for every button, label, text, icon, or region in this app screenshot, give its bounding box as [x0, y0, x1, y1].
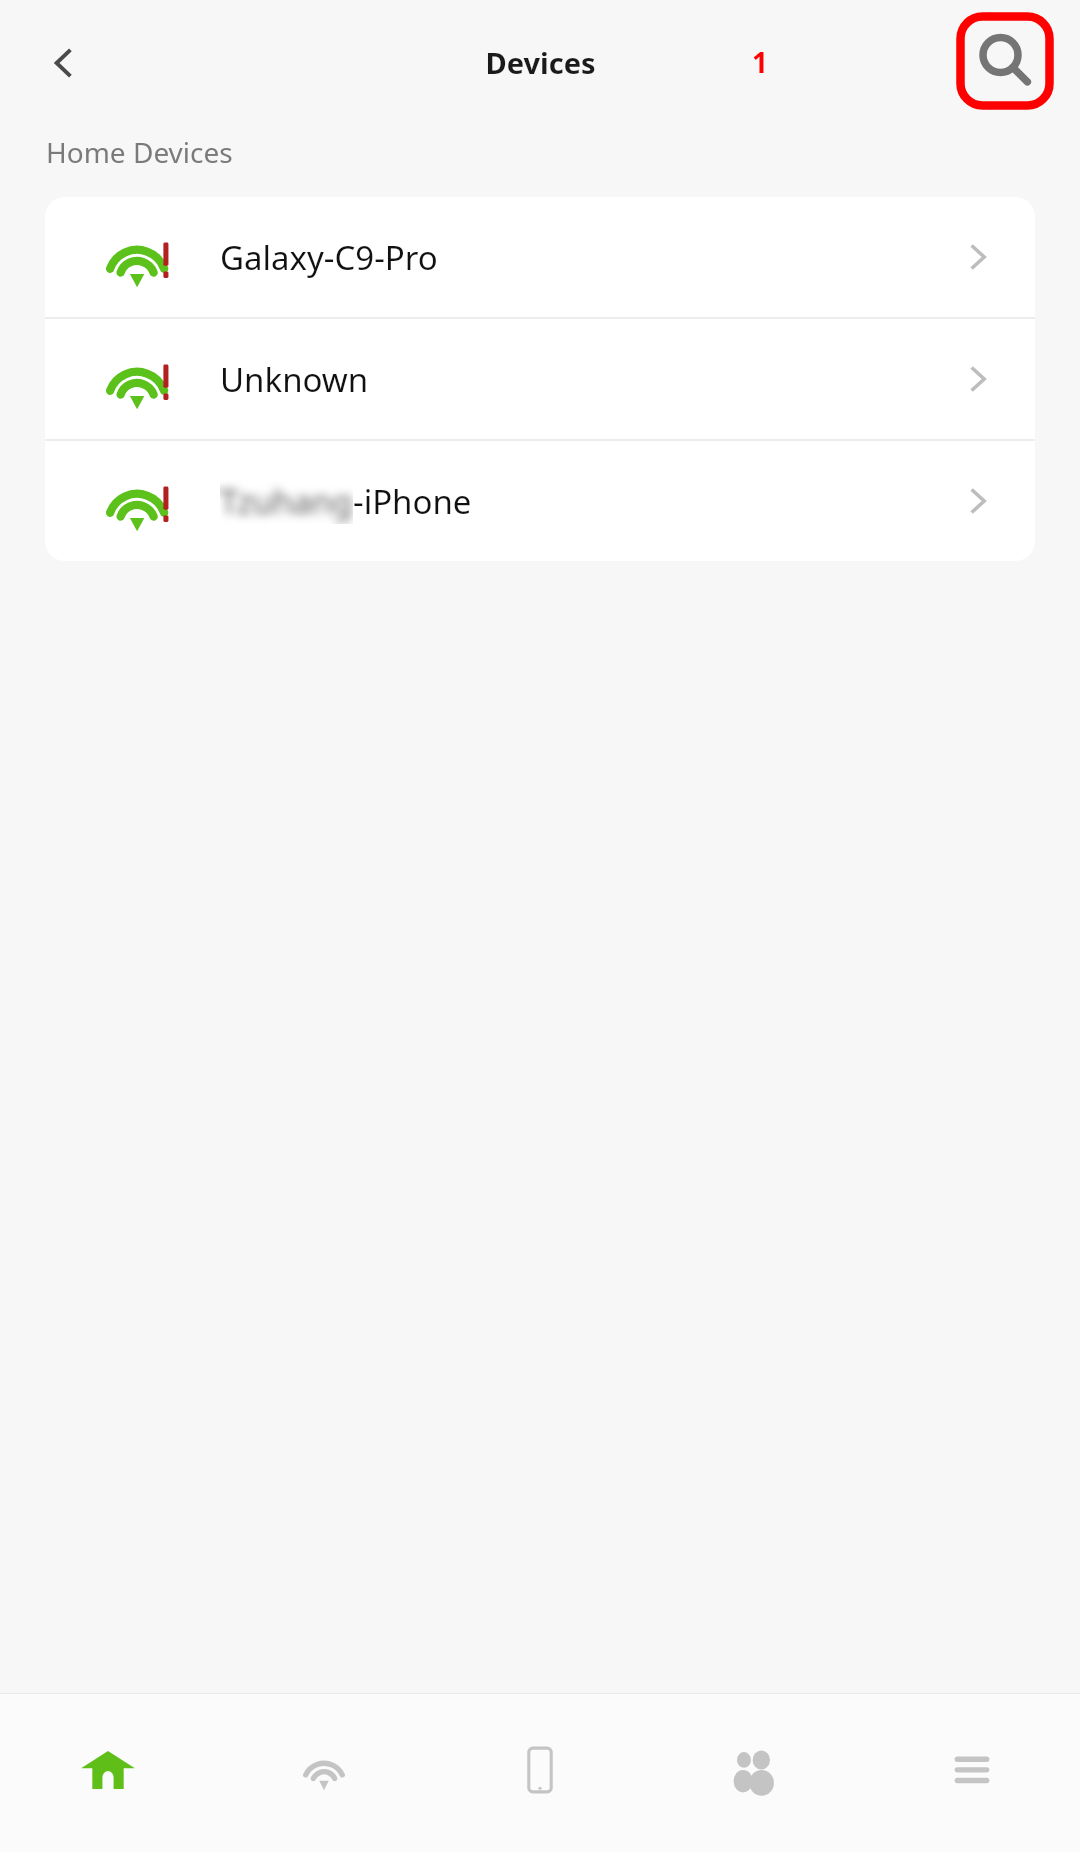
button[interactable]: Back: [30, 28, 100, 98]
button[interactable]: Family: [648, 1694, 864, 1852]
button[interactable]: Menu: [864, 1694, 1080, 1852]
button[interactable]: Galaxy-C9-Pro: [45, 197, 1035, 317]
button[interactable]: Wi-Fi: [216, 1694, 432, 1852]
staticText: -iPhone: [353, 479, 472, 524]
staticText: Devices: [485, 43, 596, 82]
button[interactable]: Search: [955, 11, 1055, 111]
staticText: Unknown: [220, 357, 369, 402]
button[interactable]: Tzuhang: [45, 441, 1035, 561]
staticText: 1: [752, 43, 769, 81]
staticText: Tzuhang: [220, 479, 353, 524]
button[interactable]: Device: [432, 1694, 648, 1852]
staticText: Galaxy-C9-Pro: [220, 235, 438, 280]
staticText: Home Devices: [46, 133, 233, 171]
button[interactable]: Home: [0, 1694, 216, 1852]
button[interactable]: Unknown: [45, 319, 1035, 439]
